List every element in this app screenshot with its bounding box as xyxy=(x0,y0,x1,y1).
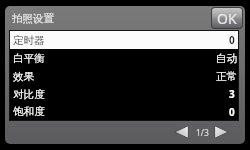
staticText: 拍照设置 xyxy=(12,12,54,25)
staticText: 0 xyxy=(229,33,235,47)
staticText: 自动 xyxy=(216,52,238,65)
button[interactable]: 饱和度 xyxy=(10,103,238,120)
staticText: 效果 xyxy=(13,70,35,83)
staticText: 3 xyxy=(229,87,235,101)
staticText: 饱和度 xyxy=(13,105,45,118)
button[interactable]: Next page xyxy=(214,125,229,139)
button[interactable]: 对比度 xyxy=(10,85,238,103)
staticText: 对比度 xyxy=(13,88,45,101)
button[interactable]: OK xyxy=(212,8,242,28)
staticText: 1/3 xyxy=(196,127,209,139)
staticText: 定时器 xyxy=(13,34,45,47)
staticText: 白平衡 xyxy=(13,52,45,65)
button[interactable]: Previous page xyxy=(174,125,189,139)
button[interactable]: 白平衡 xyxy=(10,49,238,67)
button[interactable]: 效果 xyxy=(10,67,238,85)
staticText: 正常 xyxy=(216,70,238,83)
staticText: 0 xyxy=(229,105,235,119)
button[interactable]: 定时器 xyxy=(10,31,238,49)
staticText: OK xyxy=(217,9,237,28)
